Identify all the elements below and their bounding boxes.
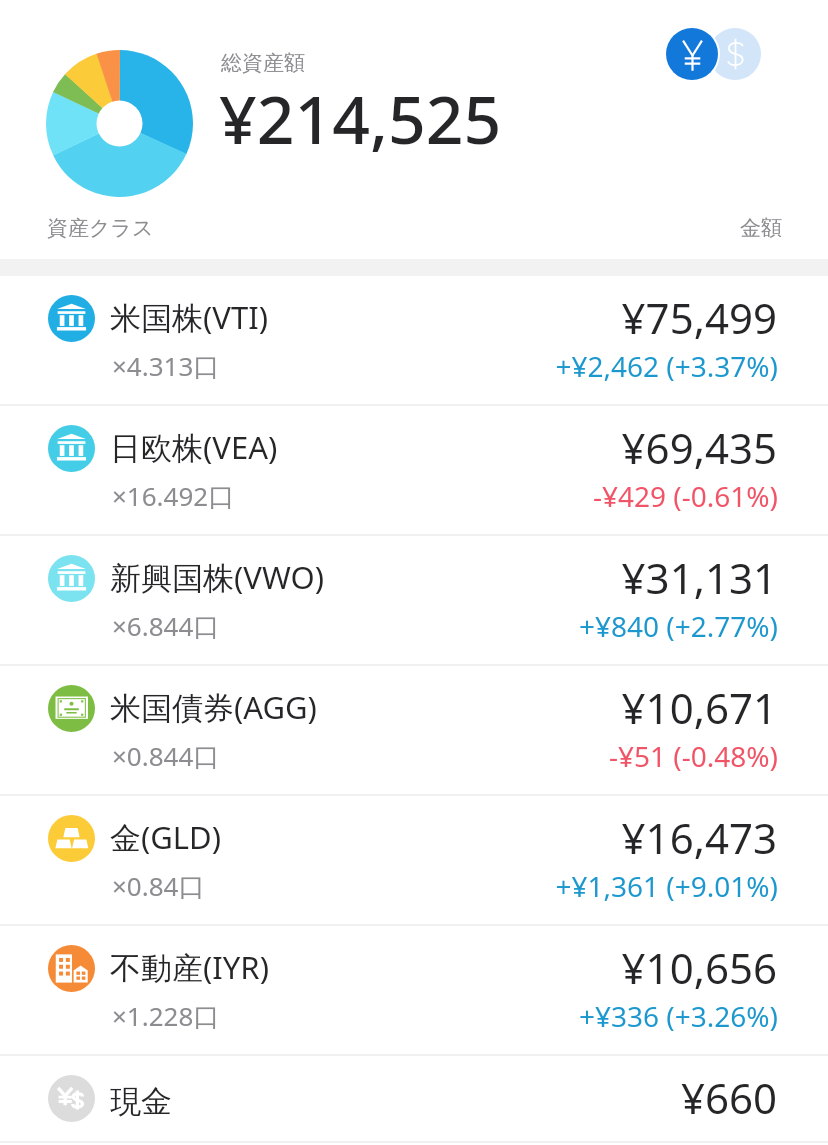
staticText: -¥429 (-0.61%) bbox=[0, 477, 778, 515]
staticText: -¥51 (-0.48%) bbox=[0, 737, 778, 775]
staticText: 金額 bbox=[0, 215, 782, 241]
staticText: ¥10,671 bbox=[0, 679, 777, 736]
staticText: ¥10,656 bbox=[0, 939, 777, 996]
staticText: ×4.313口 bbox=[112, 348, 220, 384]
button[interactable]: 米国債券(AGG) bbox=[0, 666, 828, 795]
staticText: +¥840 (+2.77%) bbox=[0, 607, 778, 645]
staticText: +¥336 (+3.26%) bbox=[0, 997, 778, 1035]
staticText: 資産クラス bbox=[47, 215, 154, 241]
staticText: ×6.844口 bbox=[112, 608, 220, 644]
staticText: 不動産(IYR) bbox=[110, 946, 269, 988]
staticText: ¥31,131 bbox=[0, 549, 777, 606]
staticText: ×1.228口 bbox=[112, 998, 220, 1034]
button[interactable]: Japanese yen bbox=[666, 28, 718, 80]
button[interactable]: 金(GLD) bbox=[0, 796, 828, 925]
button[interactable]: 不動産(IYR) bbox=[0, 926, 828, 1055]
button[interactable]: 日欧株(VEA) bbox=[0, 406, 828, 535]
staticText: 米国株(VTI) bbox=[110, 296, 268, 338]
staticText: ×0.84口 bbox=[112, 868, 205, 904]
staticText: ¥75,499 bbox=[0, 289, 777, 346]
staticText: ¥16,473 bbox=[0, 809, 777, 866]
button[interactable]: 新興国株(VWO) bbox=[0, 536, 828, 665]
staticText: 現金 bbox=[110, 1082, 172, 1121]
staticText: 日欧株(VEA) bbox=[110, 426, 278, 468]
staticText: ×16.492口 bbox=[112, 478, 235, 514]
staticText: 金(GLD) bbox=[110, 816, 222, 858]
staticText: ¥660 bbox=[0, 1069, 777, 1126]
staticText: ¥69,435 bbox=[0, 419, 777, 476]
button[interactable]: 現金 bbox=[0, 1056, 828, 1141]
button[interactable]: US dollar bbox=[709, 28, 761, 80]
staticText: +¥1,361 (+9.01%) bbox=[0, 867, 778, 905]
staticText: 米国債券(AGG) bbox=[110, 686, 317, 728]
staticText: 総資産額 bbox=[221, 50, 305, 76]
staticText: 新興国株(VWO) bbox=[110, 556, 324, 598]
staticText: ×0.844口 bbox=[112, 738, 220, 774]
staticText: ¥214,525 bbox=[219, 73, 502, 163]
staticText: +¥2,462 (+3.37%) bbox=[0, 347, 778, 385]
button[interactable]: 米国株(VTI) bbox=[0, 276, 828, 405]
